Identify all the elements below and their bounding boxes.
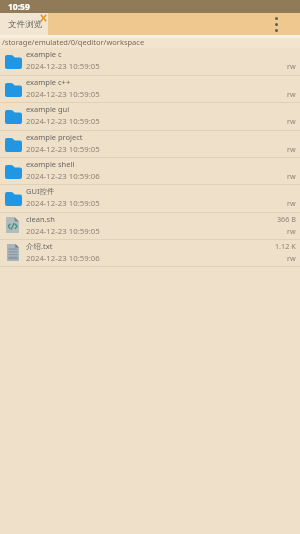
staticText: clean.sh bbox=[26, 214, 55, 224]
staticText: rw bbox=[287, 253, 296, 263]
staticText: 文件浏览 bbox=[8, 19, 42, 30]
staticText: 2024-12-23 10:59:05 bbox=[26, 144, 100, 155]
button[interactable]: clean.sh bbox=[0, 213, 300, 240]
button[interactable]: example gui bbox=[0, 103, 300, 131]
staticText: example project bbox=[26, 132, 83, 142]
button[interactable]: 文件浏览 bbox=[0, 13, 48, 35]
button[interactable]: example shell bbox=[0, 158, 300, 185]
staticText: 2024-12-23 10:59:05 bbox=[26, 198, 100, 209]
button[interactable]: example project bbox=[0, 131, 300, 158]
button[interactable]: Close tab bbox=[40, 14, 47, 22]
staticText: rw bbox=[287, 116, 296, 126]
staticText: /storage/emulated/0/qeditor/workspace bbox=[2, 37, 145, 47]
button[interactable]: /storage/emulated/0/qeditor/workspace bbox=[0, 35, 300, 48]
staticText: 2024-12-23 10:59:06 bbox=[26, 171, 100, 182]
staticText: example gui bbox=[26, 104, 70, 114]
button[interactable]: More options bbox=[263, 13, 289, 35]
staticText: 10:59 bbox=[8, 1, 30, 13]
staticText: example shell bbox=[26, 159, 75, 169]
staticText: 2024-12-23 10:59:05 bbox=[26, 89, 100, 100]
staticText: 366 B bbox=[277, 214, 296, 224]
button[interactable]: GUI控件 bbox=[0, 185, 300, 213]
staticText: rw bbox=[287, 144, 296, 154]
staticText: 2024-12-23 10:59:05 bbox=[26, 116, 100, 127]
staticText: example c bbox=[26, 49, 62, 59]
staticText: GUI控件 bbox=[26, 186, 55, 196]
staticText: 2024-12-23 10:59:05 bbox=[26, 226, 100, 237]
staticText: rw bbox=[287, 226, 296, 236]
staticText: 2024-12-23 10:59:05 bbox=[26, 61, 100, 72]
staticText: 2024-12-23 10:59:06 bbox=[26, 253, 100, 264]
staticText: rw bbox=[287, 171, 296, 181]
button[interactable]: 介绍.txt bbox=[0, 240, 300, 267]
staticText: rw bbox=[287, 198, 296, 208]
staticText: 1.12 K bbox=[275, 241, 296, 251]
button[interactable]: example c bbox=[0, 48, 300, 76]
staticText: 介绍.txt bbox=[26, 241, 53, 251]
button[interactable]: example c++ bbox=[0, 76, 300, 103]
staticText: rw bbox=[287, 61, 296, 71]
staticText: rw bbox=[287, 89, 296, 99]
staticText: example c++ bbox=[26, 77, 71, 87]
